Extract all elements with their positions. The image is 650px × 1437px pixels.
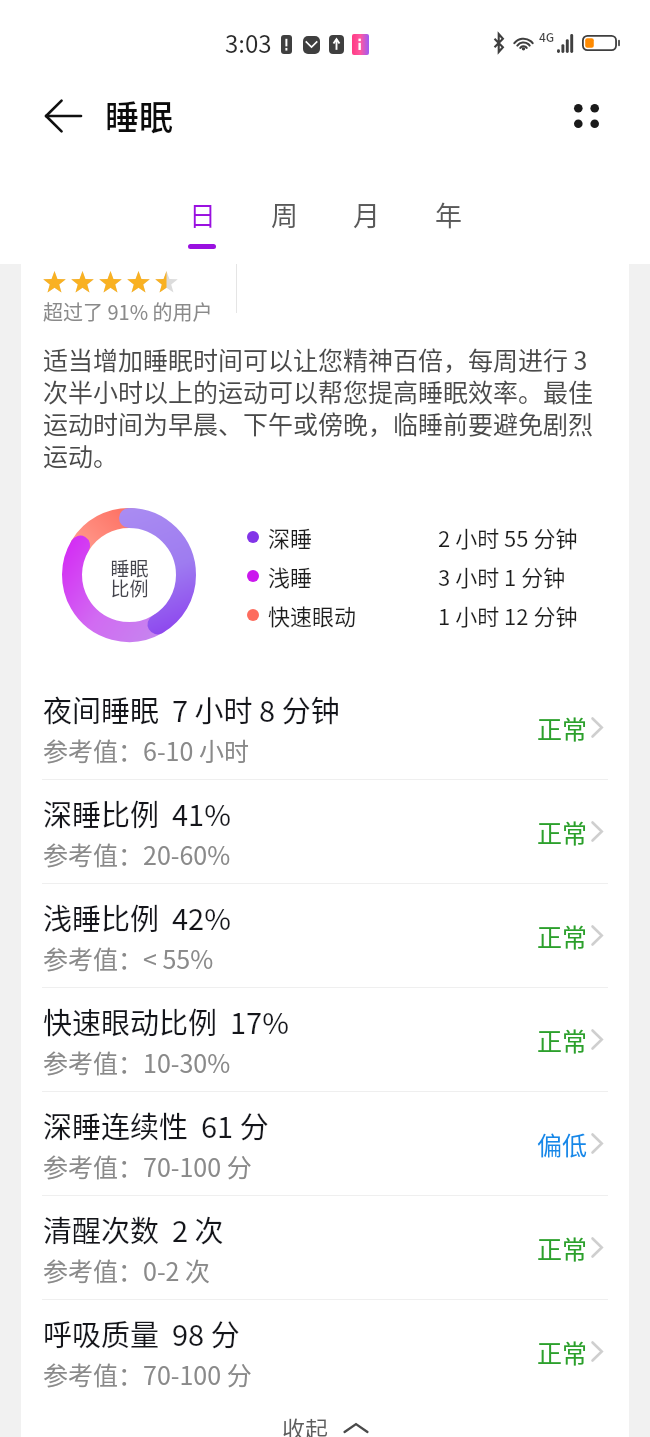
staticText: 参考值：10-30% [43,1044,231,1080]
button[interactable]: 周 [243,190,325,254]
button[interactable]: 返回 [31,86,95,145]
staticText: 参考值：0-2 次 [43,1252,211,1288]
staticText: 正常 [537,918,588,954]
staticText: 偏低 [537,1126,588,1162]
staticText: 参考值：< 55% [43,940,214,976]
button[interactable]: 收起 [21,1403,629,1437]
staticText: 正常 [537,1334,588,1370]
button[interactable]: 月 [325,190,407,254]
staticText: 参考值：70-100 分 [43,1356,252,1392]
button[interactable]: 日 [161,190,243,254]
staticText: 收起 [282,1411,328,1437]
staticText: 参考值：70-100 分 [43,1148,252,1184]
staticText: 1 小时 12 分钟 [438,599,578,631]
button[interactable]: 年 [407,190,489,254]
staticText: 周 [271,195,298,234]
button[interactable]: 更多选项 [554,86,618,145]
button[interactable]: 深睡连续性 61 分 [21,1092,629,1195]
staticText: 3 小时 1 分钟 [438,560,566,592]
staticText: 呼吸质量 98 分 [43,1312,240,1354]
staticText: 快速眼动比例 17% [43,1000,289,1042]
staticText: 4G [539,28,555,45]
staticText: 日 [189,195,216,234]
button[interactable]: 深睡比例 41% [21,780,629,883]
staticText: 深睡 [268,521,438,553]
button[interactable]: 夜间睡眠 7 小时 8 分钟 [21,676,629,779]
staticText: 年 [435,195,462,234]
button[interactable]: 呼吸质量 98 分 [21,1300,629,1403]
staticText: 正常 [537,1230,588,1266]
staticText: 参考值：6-10 小时 [43,732,249,768]
staticText: 2 小时 55 分钟 [438,521,578,553]
staticText: 快速眼动 [268,599,438,631]
staticText: 夜间睡眠 7 小时 8 分钟 [43,688,340,730]
staticText: 参考值：20-60% [43,836,231,872]
staticText: 超过了 91% 的用户 [43,297,213,326]
staticText: 月 [353,195,380,234]
staticText: 适当增加睡眠时间可以让您精神百倍，每周进行 3 次半小时以上的运动可以帮您提高睡… [43,344,615,472]
staticText: 深睡比例 41% [43,792,231,834]
staticText: 睡眠 比例 [110,560,149,600]
button[interactable]: 清醒次数 2 次 [21,1196,629,1299]
button[interactable]: 快速眼动比例 17% [21,988,629,1091]
staticText: 清醒次数 2 次 [43,1208,224,1250]
staticText: 正常 [537,814,588,850]
button[interactable]: 浅睡比例 42% [21,884,629,987]
staticText: 正常 [537,1022,588,1058]
staticText: 浅睡比例 42% [43,896,231,938]
staticText: 深睡连续性 61 分 [43,1104,269,1146]
staticText: 睡眠 [105,91,173,140]
staticText: 浅睡 [268,560,438,592]
staticText: 3:03 [225,25,272,60]
staticText: 正常 [537,710,588,746]
